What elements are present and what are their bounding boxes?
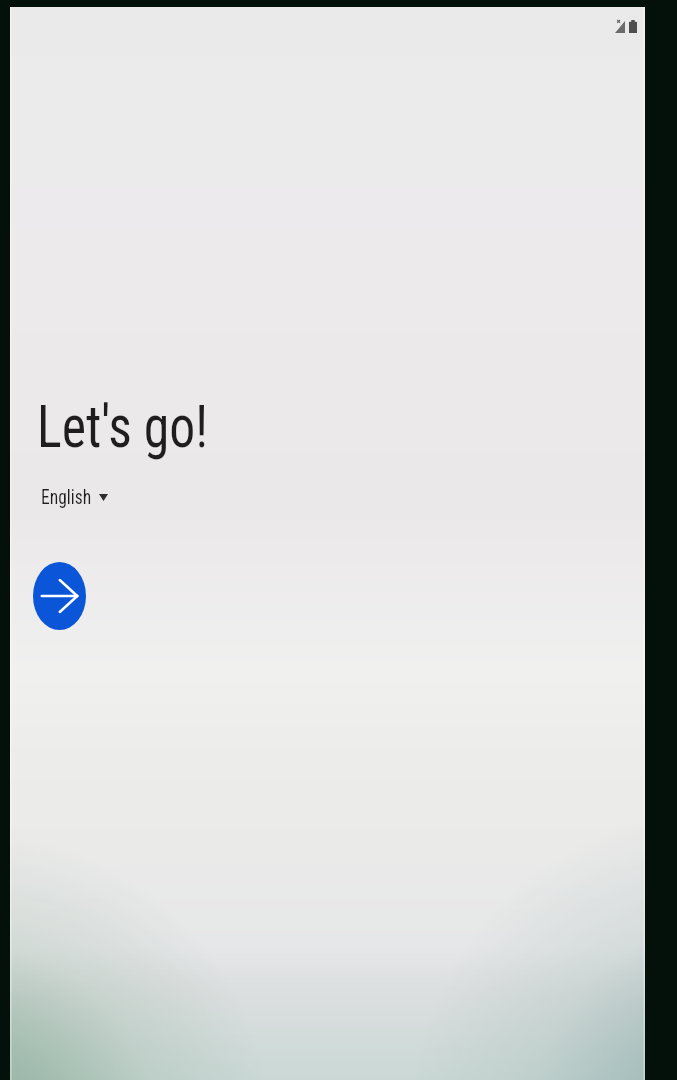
staticText: English (41, 485, 92, 508)
button[interactable]: Next (33, 562, 86, 630)
staticText: Let's go! (37, 392, 208, 461)
button[interactable]: English (41, 481, 125, 511)
